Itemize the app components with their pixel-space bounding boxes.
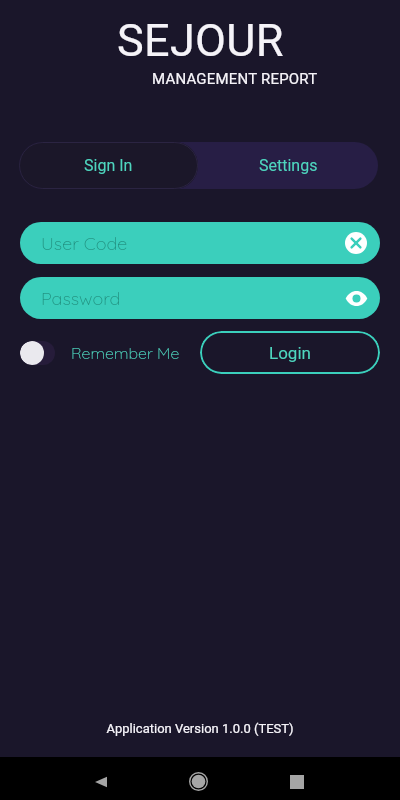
button[interactable]: Sign In [19,142,198,189]
button[interactable]: Login [200,331,380,374]
button[interactable]: Clear user code [344,231,368,255]
staticText: User Code [41,232,128,255]
staticText: Remember Me [71,343,180,363]
staticText: SEJOUR [117,14,284,67]
button[interactable]: Remember Me [20,341,180,365]
button[interactable]: Settings [198,142,378,189]
staticText: Application Version 1.0.0 (TEST) [0,721,400,736]
staticText: Settings [259,156,318,175]
staticText: Password [41,287,121,310]
staticText: MANAGEMENT REPORT [152,70,318,88]
staticText: Login [269,343,311,363]
button[interactable]: User Code [20,222,380,264]
staticText: Sign In [84,156,133,175]
button[interactable]: Back [78,760,123,800]
button[interactable]: Recent apps [274,760,319,800]
button[interactable]: Home [176,760,221,800]
button[interactable]: Password [20,277,380,319]
button[interactable]: Show password [344,286,368,310]
